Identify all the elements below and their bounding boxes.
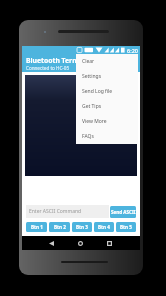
button[interactable]: Send Log file (76, 84, 138, 99)
button[interactable]: Btn 2 (49, 222, 70, 232)
button[interactable]: Btn 4 (94, 222, 114, 232)
staticText: Send ASCII (111, 209, 136, 215)
staticText: Btn 2 (54, 224, 66, 230)
staticText: Bluetooth Terminal (26, 56, 92, 65)
staticText: FAQs (82, 133, 94, 140)
staticText: Enter ASCII Command (29, 208, 82, 215)
button[interactable]: Btn 5 (116, 222, 136, 232)
button[interactable]: Enter ASCII Command (26, 205, 109, 218)
button[interactable]: Settings (76, 69, 138, 84)
button[interactable]: Btn 1 (26, 222, 47, 232)
button[interactable]: Clear (76, 54, 138, 69)
button[interactable]: FAQs (76, 129, 138, 144)
staticText: Btn 3 (76, 224, 88, 230)
staticText: Btn 1 (31, 224, 43, 230)
button[interactable]: Back (44, 236, 58, 250)
staticText: Settings (82, 73, 102, 80)
button[interactable]: Get Tips (76, 99, 138, 114)
staticText: Btn 4 (98, 224, 110, 230)
button[interactable]: Send ASCII (110, 206, 136, 218)
staticText: Get Tips (82, 103, 102, 110)
staticText: View More (82, 118, 107, 125)
staticText: 6:20 (127, 47, 138, 54)
button[interactable]: View More (76, 114, 138, 129)
staticText: Btn 5 (120, 224, 132, 230)
staticText: Connected to HC-05 (26, 65, 70, 71)
button[interactable]: Home (73, 236, 87, 250)
staticText: Send Log file (82, 88, 113, 95)
button[interactable]: Recents (102, 236, 116, 250)
staticText: Clear (82, 58, 95, 65)
button[interactable]: Btn 3 (72, 222, 92, 232)
